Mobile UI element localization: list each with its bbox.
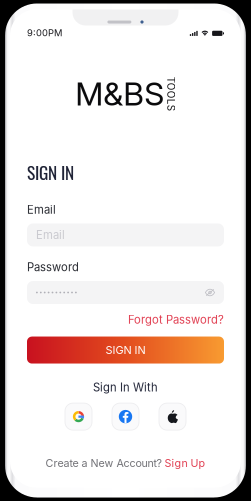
button[interactable]: SIGN IN: [27, 337, 224, 364]
staticText: Email: [27, 203, 56, 216]
staticText: Create a New Account?: [45, 457, 161, 469]
staticText: TOOLS: [154, 88, 188, 100]
staticText: Email: [36, 228, 65, 242]
staticText: Password: [27, 260, 79, 274]
button[interactable]: Create a New Account?: [10, 452, 241, 474]
staticText: M&BS: [75, 74, 164, 113]
staticText: Sign In With: [93, 381, 158, 394]
button[interactable]: Show password: [205, 289, 215, 296]
button[interactable]: Sign in with Facebook: [112, 403, 139, 430]
staticText: 9:00PM: [27, 27, 62, 38]
button[interactable]: Forgot Password?: [128, 313, 224, 327]
button[interactable]: Sign in with Google: [65, 403, 92, 430]
button[interactable]: Sign in with Apple: [159, 403, 186, 430]
staticText: SIGN IN: [27, 159, 74, 185]
staticText: Forgot Password?: [128, 313, 224, 327]
staticText: SIGN IN: [105, 343, 145, 357]
staticText: Sign Up: [164, 457, 205, 469]
